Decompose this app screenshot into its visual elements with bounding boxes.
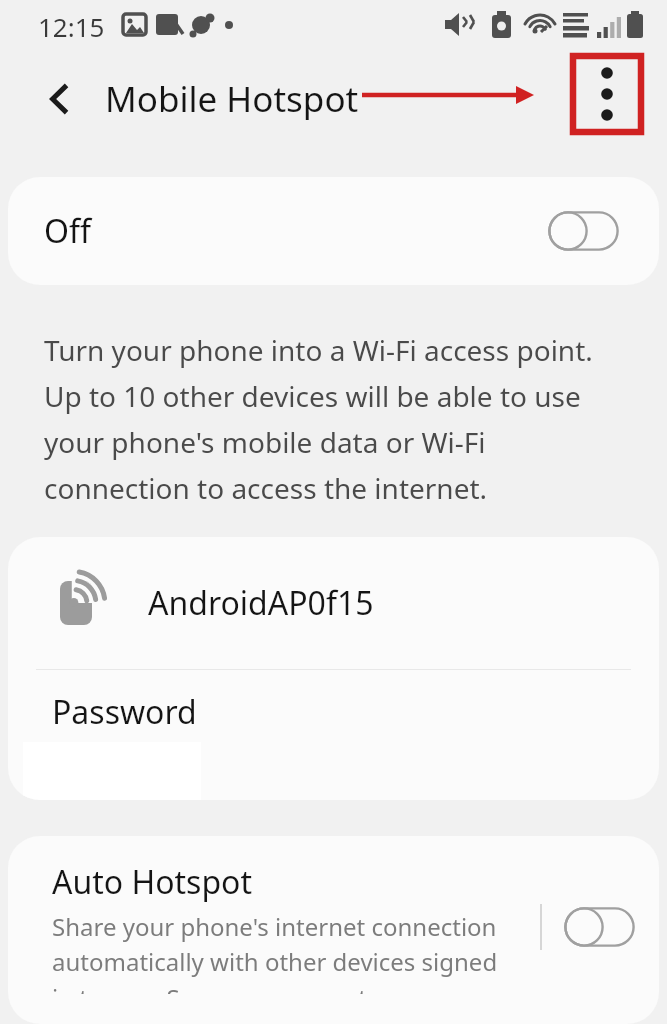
staticText: Off [44, 209, 92, 253]
staticText: Mobile Hotspot [105, 75, 359, 123]
button[interactable]: AndroidAP0f15 [8, 537, 659, 669]
button[interactable]: Password [8, 670, 659, 800]
staticText: AndroidAP0f15 [148, 581, 374, 625]
staticText: 12:15 [38, 9, 105, 44]
staticText: Password [52, 690, 197, 734]
button[interactable]: More options [573, 56, 641, 132]
button[interactable]: Auto Hotspot toggle [564, 907, 635, 947]
button[interactable]: Auto Hotspot [8, 836, 659, 1024]
staticText: Auto Hotspot [52, 860, 253, 904]
staticText: Share your phone's internet connection a… [52, 910, 524, 994]
staticText: Turn your phone into a Wi-Fi access poin… [44, 331, 615, 507]
button[interactable]: Off [8, 177, 659, 285]
button[interactable]: Back [30, 70, 88, 128]
